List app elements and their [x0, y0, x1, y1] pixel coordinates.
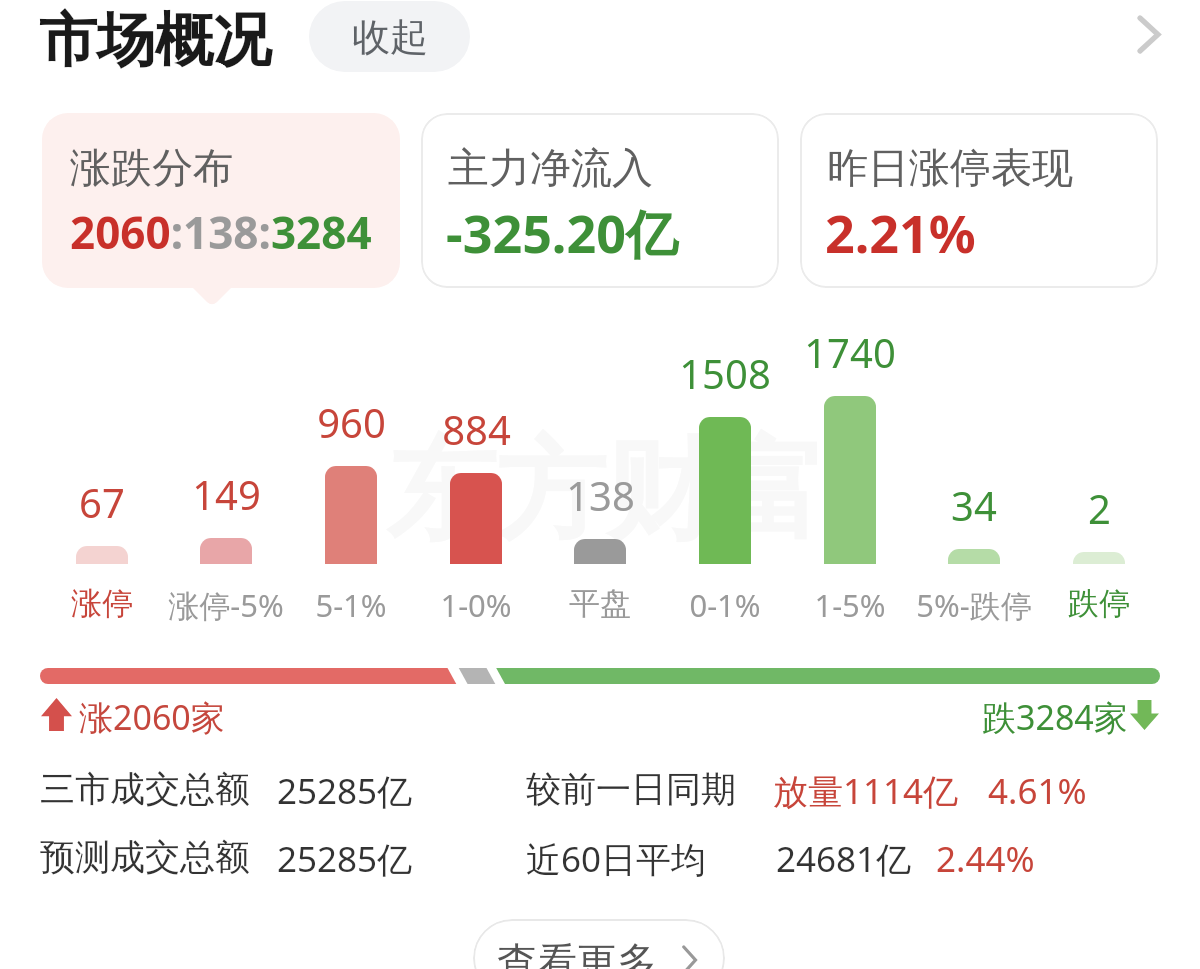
- staticText: 预测成交总额: [40, 835, 250, 879]
- button[interactable]: 收起: [309, 1, 470, 72]
- button[interactable]: 涨跌分布: [42, 113, 400, 288]
- staticText: 三市成交总额: [40, 767, 250, 811]
- staticText: 主力净流入: [448, 143, 653, 195]
- staticText: 5-1%: [315, 584, 387, 626]
- staticText: 67: [79, 475, 125, 529]
- staticText: 跌停: [1068, 584, 1130, 623]
- button[interactable]: 市场概况: [39, 4, 271, 77]
- staticText: 2060:138:3284: [70, 202, 372, 262]
- staticText: 2: [1088, 481, 1111, 535]
- staticText: 34: [951, 478, 997, 532]
- button[interactable]: 昨日涨停表现: [800, 113, 1158, 288]
- staticText: 1-0%: [440, 584, 512, 626]
- staticText: 市场概况: [39, 4, 271, 77]
- staticText: 5%-跌停: [916, 584, 1032, 626]
- button[interactable]: More: [1118, 3, 1180, 65]
- staticText: 960: [317, 395, 386, 449]
- staticText: 1-5%: [814, 584, 886, 626]
- staticText: 跌3284家: [982, 694, 1128, 740]
- staticText: 1740: [804, 325, 896, 379]
- staticText: 0-1%: [689, 584, 761, 626]
- staticText: 查看更多: [497, 937, 657, 969]
- staticText: 2.21%: [825, 197, 976, 268]
- button[interactable]: 查看更多: [473, 919, 725, 969]
- staticText: -325.20亿: [446, 197, 678, 268]
- staticText: 收起: [352, 13, 428, 61]
- staticText: 昨日涨停表现: [827, 143, 1073, 195]
- staticText: 2.44%: [936, 835, 1035, 883]
- staticText: 4.61%: [988, 767, 1087, 815]
- staticText: 138: [566, 468, 635, 522]
- staticText: 涨停-5%: [168, 584, 284, 626]
- staticText: 1508: [679, 346, 771, 400]
- staticText: 25285亿: [277, 767, 413, 815]
- staticText: 25285亿: [277, 835, 413, 883]
- staticText: 149: [192, 467, 261, 521]
- staticText: 884: [442, 402, 511, 456]
- staticText: 近60日平均: [526, 835, 707, 883]
- button[interactable]: 主力净流入: [421, 113, 779, 288]
- staticText: 较前一日同期: [526, 767, 736, 811]
- staticText: 东方财富: [386, 422, 826, 561]
- staticText: 涨跌分布: [70, 143, 234, 195]
- staticText: 放量1114亿: [773, 767, 959, 815]
- staticText: 涨停: [71, 584, 133, 623]
- staticText: 平盘: [569, 584, 631, 623]
- staticText: 24681亿: [776, 835, 912, 883]
- staticText: 涨2060家: [79, 694, 225, 740]
